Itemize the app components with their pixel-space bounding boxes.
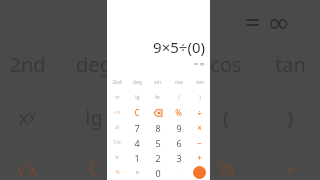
staticText: sin bbox=[146, 51, 174, 78]
button[interactable]: 1/x bbox=[107, 135, 127, 150]
staticText: x! bbox=[115, 124, 119, 131]
button[interactable]: tan bbox=[189, 74, 210, 90]
staticText: deg bbox=[76, 51, 112, 78]
button[interactable]: 4 bbox=[127, 135, 147, 150]
button[interactable]: sin bbox=[147, 74, 168, 90]
button[interactable]: 7 bbox=[127, 120, 147, 135]
staticText: 3 bbox=[176, 152, 182, 164]
button[interactable]: % bbox=[168, 105, 189, 120]
button[interactable]: Equals bbox=[193, 166, 206, 179]
staticText: ln bbox=[155, 94, 160, 101]
staticText: ÷ bbox=[197, 107, 202, 118]
staticText: xʸ bbox=[115, 94, 120, 101]
staticText: sin bbox=[154, 79, 161, 86]
staticText: e bbox=[136, 169, 139, 176]
staticText: % bbox=[218, 155, 235, 180]
staticText: 2nd bbox=[112, 79, 122, 86]
staticText: deg bbox=[133, 79, 142, 86]
button[interactable]: deg bbox=[127, 74, 147, 90]
button[interactable]: e bbox=[127, 165, 147, 180]
staticText: lg bbox=[85, 104, 103, 131]
staticText: 6 bbox=[176, 137, 182, 149]
button[interactable]: xʸ bbox=[107, 90, 127, 105]
button[interactable]: 6 bbox=[168, 135, 189, 150]
button[interactable]: cos bbox=[168, 74, 189, 90]
other: Backspace bbox=[154, 109, 162, 117]
staticText: . bbox=[178, 169, 180, 176]
staticText: 0 bbox=[155, 167, 161, 179]
staticText: C bbox=[134, 107, 140, 118]
button[interactable]: × bbox=[189, 120, 210, 135]
staticText: 2 bbox=[155, 152, 161, 164]
staticText: √x bbox=[15, 155, 39, 180]
button[interactable]: 9 bbox=[168, 120, 189, 135]
staticText: 8 bbox=[155, 122, 161, 134]
button[interactable]: 0 bbox=[147, 165, 168, 180]
staticText: 9 bbox=[176, 122, 182, 134]
staticText: ⌫ bbox=[146, 157, 175, 180]
button[interactable]: − bbox=[189, 135, 210, 150]
button[interactable]: C bbox=[127, 105, 147, 120]
button[interactable]: x! bbox=[107, 120, 127, 135]
staticText: % bbox=[175, 107, 182, 118]
button[interactable]: √x bbox=[107, 105, 127, 120]
staticText: π bbox=[115, 154, 119, 161]
button[interactable]: lg bbox=[127, 90, 147, 105]
staticText: tan bbox=[275, 51, 306, 78]
staticText: ÷ bbox=[284, 155, 296, 180]
staticText: 7 bbox=[134, 122, 140, 134]
staticText: − bbox=[197, 137, 202, 148]
button[interactable]: 3 bbox=[168, 150, 189, 165]
button[interactable]: π bbox=[107, 150, 127, 165]
staticText: = ∞ bbox=[194, 59, 205, 68]
button[interactable]: 1 bbox=[127, 150, 147, 165]
button[interactable]: ÷ bbox=[189, 105, 210, 120]
staticText: √x bbox=[114, 109, 120, 116]
button[interactable]: 2 bbox=[147, 150, 168, 165]
staticText: ) bbox=[199, 94, 201, 101]
staticText: tan bbox=[196, 79, 204, 86]
staticText: % bbox=[115, 169, 120, 176]
staticText: cos bbox=[175, 79, 183, 86]
staticText: 1 bbox=[134, 152, 140, 164]
staticText: ( bbox=[178, 94, 180, 101]
staticText: 2nd bbox=[9, 51, 46, 78]
staticText: 4 bbox=[134, 137, 140, 149]
button[interactable]: % bbox=[107, 165, 127, 180]
staticText: 1/x bbox=[113, 139, 121, 146]
staticText: xʸ bbox=[18, 104, 36, 131]
button[interactable]: + bbox=[189, 150, 210, 165]
button[interactable]: Backspace bbox=[147, 105, 168, 120]
button[interactable]: ln bbox=[147, 90, 168, 105]
staticText: = ∞ bbox=[245, 3, 290, 40]
button[interactable]: Equals bbox=[189, 165, 210, 180]
staticText: C bbox=[88, 155, 101, 180]
staticText: ( bbox=[223, 104, 229, 131]
staticText: × bbox=[197, 122, 202, 133]
button[interactable]: ) bbox=[189, 90, 210, 105]
button[interactable]: 5 bbox=[147, 135, 168, 150]
staticText: lg bbox=[135, 94, 140, 101]
button[interactable]: 8 bbox=[147, 120, 168, 135]
button[interactable]: 2nd bbox=[107, 74, 127, 90]
staticText: + bbox=[197, 152, 202, 163]
staticText: ln bbox=[151, 104, 169, 131]
staticText: 5 bbox=[155, 137, 161, 149]
button[interactable]: ( bbox=[168, 90, 189, 105]
staticText: ) bbox=[287, 104, 293, 131]
staticText: 9×5÷(0) bbox=[153, 37, 205, 57]
staticText: cos bbox=[210, 51, 242, 78]
